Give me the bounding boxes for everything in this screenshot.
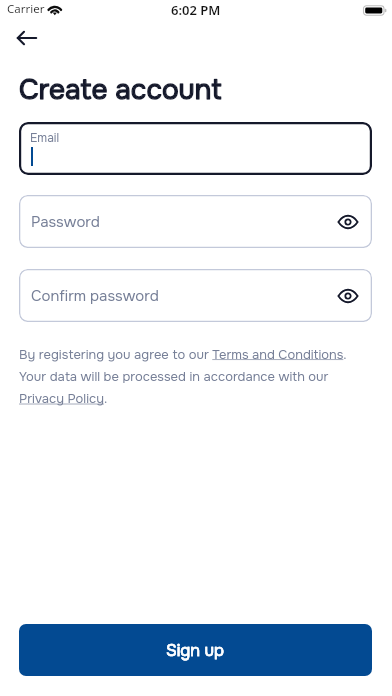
staticText: By registering you agree to our Terms an… bbox=[19, 346, 372, 407]
button[interactable]: Show password bbox=[333, 281, 363, 311]
staticText: Create account bbox=[19, 72, 222, 108]
staticText: Carrier bbox=[7, 1, 45, 17]
staticText: 6:02 PM bbox=[171, 1, 221, 19]
button[interactable]: Email bbox=[19, 122, 372, 175]
button[interactable]: Password bbox=[19, 195, 372, 248]
staticText: Password bbox=[31, 212, 333, 231]
staticText: Create account bbox=[19, 72, 222, 108]
button[interactable]: Back bbox=[9, 20, 45, 56]
staticText: Confirm password bbox=[31, 286, 333, 305]
staticText: Email bbox=[30, 130, 60, 145]
button[interactable]: Sign up bbox=[19, 624, 372, 676]
staticText: Sign up bbox=[166, 640, 225, 661]
button[interactable]: Show password bbox=[333, 207, 363, 237]
staticText: Sign up bbox=[166, 640, 225, 661]
button[interactable]: Confirm password bbox=[19, 269, 372, 322]
